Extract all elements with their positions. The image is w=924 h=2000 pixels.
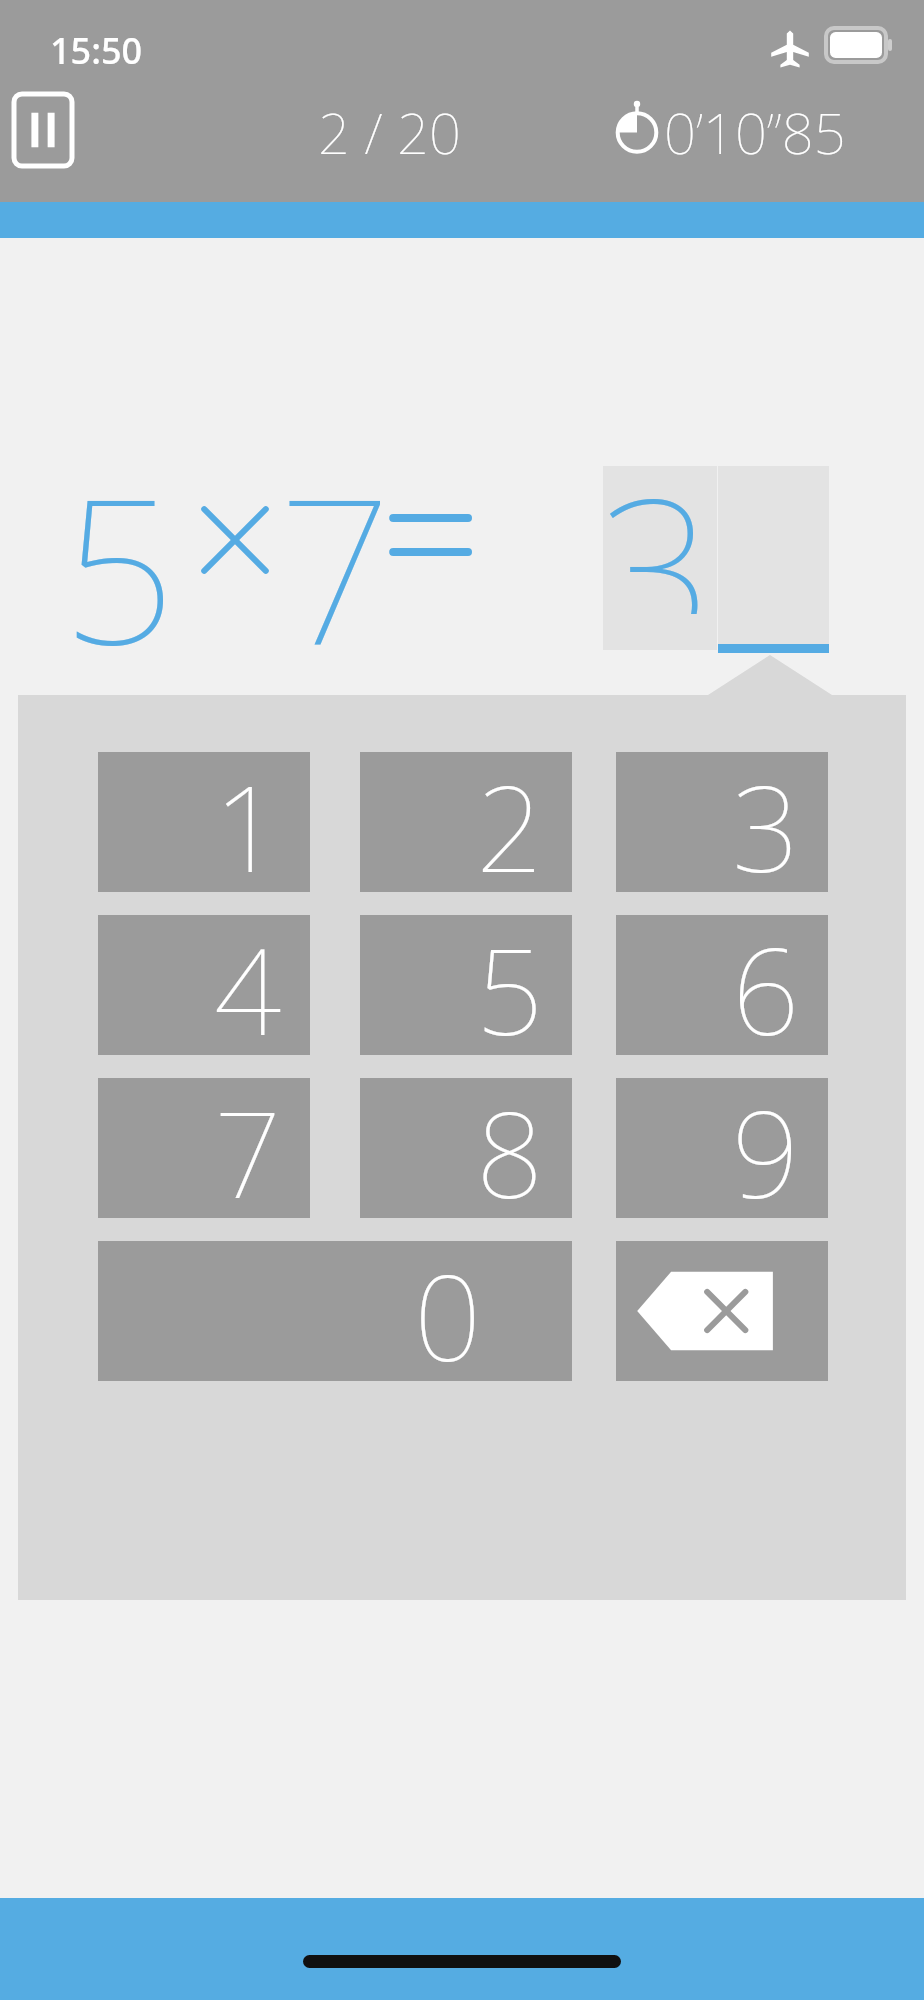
staticText: 2 [476, 746, 544, 886]
staticText: 8 [476, 1072, 544, 1212]
staticText: 9 [732, 1072, 800, 1212]
button[interactable]: Backspace [616, 1241, 828, 1381]
staticText: 7 [214, 1072, 282, 1212]
staticText: 0’10”85 [664, 94, 846, 170]
staticText: 3 [732, 746, 800, 886]
button[interactable]: 3 [603, 466, 717, 650]
button[interactable]: 5 [360, 915, 572, 1055]
button[interactable]: 1 [98, 752, 310, 892]
staticText: 7 [278, 430, 393, 702]
staticText: 3 [599, 430, 713, 614]
button[interactable]: Pause [14, 94, 72, 166]
staticText: 15:50 [50, 26, 143, 75]
button[interactable]: 8 [360, 1078, 572, 1218]
button[interactable]: 9 [616, 1078, 828, 1218]
staticText: 5 [476, 909, 544, 1049]
staticText: 5 [62, 430, 177, 702]
staticText: 0 [414, 1235, 482, 1375]
button[interactable]: 2 [360, 752, 572, 892]
staticText: 6 [732, 909, 800, 1049]
staticText: 2 / 20 [318, 94, 461, 170]
button[interactable] [718, 466, 829, 650]
button[interactable]: 0 [98, 1241, 572, 1381]
button[interactable]: 6 [616, 915, 828, 1055]
button[interactable]: 4 [98, 915, 310, 1055]
button[interactable]: 3 [616, 752, 828, 892]
button[interactable]: 7 [98, 1078, 310, 1218]
staticText: 4 [214, 909, 282, 1049]
staticText: 1 [214, 746, 282, 886]
